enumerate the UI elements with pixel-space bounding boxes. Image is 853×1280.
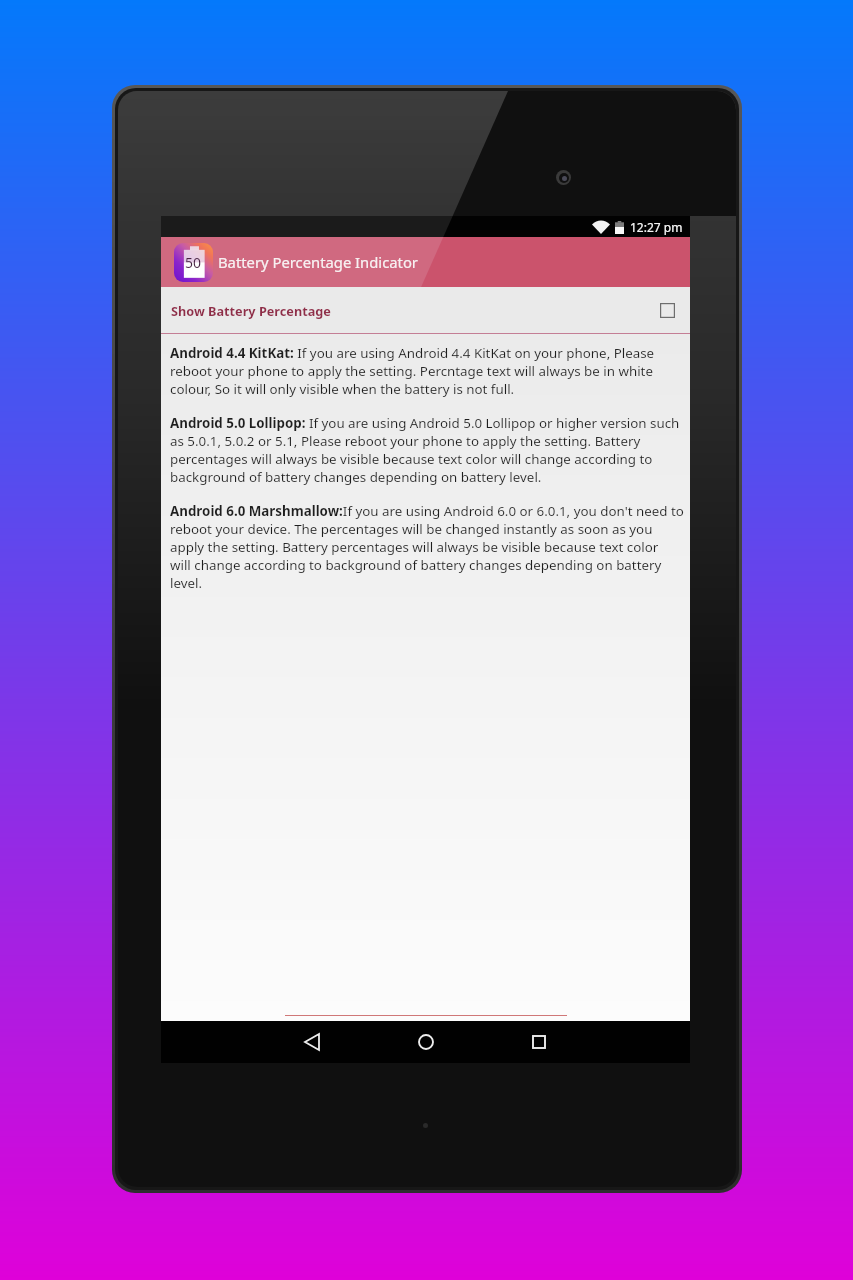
staticText: reboot your device. The percentages will… bbox=[170, 520, 653, 538]
staticText: 50 bbox=[185, 253, 202, 272]
staticText: Show Battery Percentage bbox=[171, 302, 331, 319]
staticText: Android 4.4 KitKat: If you are using And… bbox=[170, 344, 655, 362]
staticText: percentages will always be visible becau… bbox=[170, 450, 653, 468]
button[interactable]: Home bbox=[407, 1023, 445, 1061]
staticText: will change according to background of b… bbox=[170, 556, 662, 574]
staticText: 12:27 pm bbox=[630, 219, 683, 235]
button[interactable]: Show Battery Percentage bbox=[161, 287, 690, 333]
button[interactable]: Recent apps bbox=[520, 1023, 558, 1061]
staticText: apply the setting. Battery percentages w… bbox=[170, 538, 659, 556]
staticText: Android 6.0 Marshmallow:If you are using… bbox=[170, 502, 684, 520]
button[interactable]: Back bbox=[293, 1023, 331, 1061]
staticText: level. bbox=[170, 574, 203, 592]
staticText: colour, So it will only visible when the… bbox=[170, 380, 515, 398]
staticText: background of battery changes depending … bbox=[170, 468, 542, 486]
staticText: Battery Percentage Indicator bbox=[218, 252, 418, 272]
staticText: as 5.0.1, 5.0.2 or 5.1, Please reboot yo… bbox=[170, 432, 641, 450]
staticText: Android 5.0 Lollipop: If you are using A… bbox=[170, 414, 680, 432]
staticText: reboot your phone to apply the setting. … bbox=[170, 362, 653, 380]
